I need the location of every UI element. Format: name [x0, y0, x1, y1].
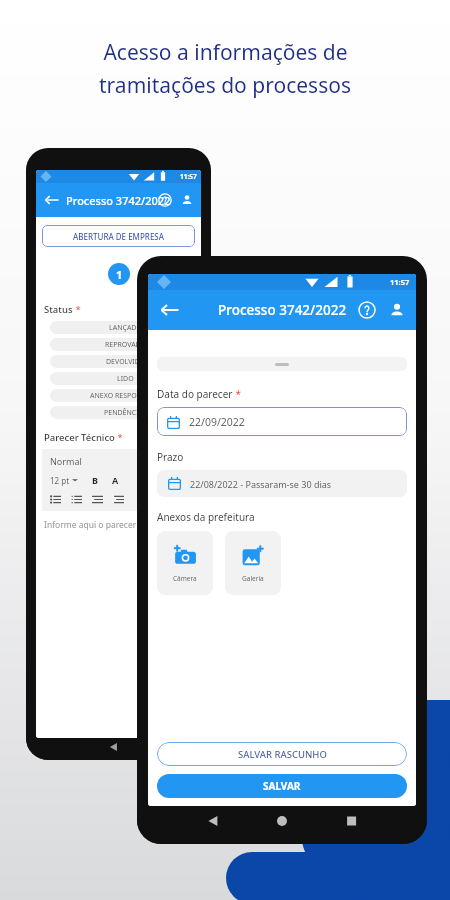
- staticText: Prazo: [157, 450, 184, 464]
- button[interactable]: Perfil: [178, 191, 196, 209]
- button[interactable]: Câmera: [157, 531, 213, 595]
- staticText: A: [112, 474, 119, 486]
- button[interactable]: Voltar: [42, 190, 62, 210]
- staticText: ANEXO RESPONDIDO: [90, 391, 161, 401]
- button[interactable]: 22/08/2022 - Passaram-se 30 dias: [157, 470, 407, 497]
- button[interactable]: Voltar: [157, 297, 183, 323]
- staticText: Processo 3742/2022: [218, 301, 347, 319]
- button[interactable]: SALVAR RASCUNHO: [157, 742, 407, 766]
- staticText: 11:57: [180, 172, 197, 181]
- staticText: *: [73, 303, 81, 316]
- button[interactable]: 22/09/2022: [157, 407, 407, 436]
- staticText: 11:57: [390, 277, 410, 287]
- staticText: *: [115, 431, 123, 444]
- staticText: Informe aqui o parecer: [44, 519, 137, 531]
- button[interactable]: ANEXO RESPONDIDO: [50, 389, 201, 402]
- staticText: DEVOLVIDO: [106, 357, 146, 367]
- staticText: 12 pt: [50, 475, 70, 486]
- staticText: Normal: [50, 455, 82, 467]
- staticText: 1: [116, 267, 123, 282]
- staticText: Processo 3742/2022: [66, 193, 171, 208]
- staticText: 22/08/2022 - Passaram-se 30 dias: [190, 478, 332, 490]
- staticText: REPROVADO: [105, 340, 147, 350]
- button[interactable]: DEVOLVIDO: [50, 355, 201, 368]
- staticText: Acesso a informações de: [103, 38, 348, 67]
- staticText: Galeria: [242, 574, 264, 583]
- staticText: tramitações do processos: [99, 71, 351, 100]
- staticText: *: [233, 387, 242, 401]
- staticText: Câmera: [173, 574, 197, 583]
- staticText: SALVAR RASCUNHO: [238, 748, 327, 761]
- staticText: B: [92, 474, 98, 486]
- button[interactable]: PENDÊNCIAS: [50, 406, 201, 419]
- button[interactable]: ABERTURA DE EMPRESA: [42, 225, 195, 247]
- button[interactable]: Galeria: [225, 531, 281, 595]
- button[interactable]: Ajuda: [156, 191, 174, 209]
- button[interactable]: [157, 357, 407, 371]
- button[interactable]: Perfil: [386, 299, 408, 321]
- staticText: Status: [44, 303, 73, 316]
- staticText: PENDÊNCIAS: [104, 408, 147, 418]
- staticText: Data do parecer: [157, 387, 233, 401]
- staticText: Anexos da prefeitura: [157, 510, 255, 524]
- staticText: 22/09/2022: [189, 415, 245, 429]
- button[interactable]: SALVAR: [157, 774, 407, 798]
- button[interactable]: Ajuda: [356, 299, 378, 321]
- staticText: Parecer Técnico: [44, 431, 115, 444]
- staticText: SALVAR: [263, 779, 301, 793]
- staticText: LIDO: [117, 374, 134, 384]
- button[interactable]: REPROVADO: [50, 338, 201, 351]
- button[interactable]: LANÇADO: [50, 321, 201, 334]
- staticText: ABERTURA DE EMPRESA: [73, 231, 164, 242]
- button[interactable]: LIDO: [50, 372, 201, 385]
- staticText: LANÇADO: [109, 323, 142, 333]
